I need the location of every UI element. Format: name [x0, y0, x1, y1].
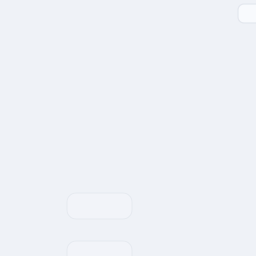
button[interactable]: Done	[238, 4, 256, 23]
